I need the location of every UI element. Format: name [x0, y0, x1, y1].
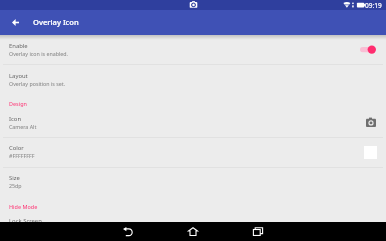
staticText: Icon [9, 115, 22, 123]
staticText: Lock Screen [9, 217, 42, 225]
button[interactable]: Home [178, 222, 208, 241]
staticText: Overlay Icon [33, 17, 79, 27]
button[interactable]: Navigate up [0, 10, 30, 35]
staticText: Size [9, 174, 20, 182]
staticText: Camera Alt [9, 123, 37, 130]
staticText: Layout [9, 72, 28, 80]
button[interactable]: Size [0, 166, 386, 196]
staticText: Color [9, 144, 24, 152]
button[interactable]: Recent apps [243, 222, 273, 241]
staticText: Enable [9, 42, 28, 50]
staticText: Hide Mode [9, 203, 38, 210]
button[interactable]: Choose icon [366, 117, 376, 127]
button[interactable]: Enable [0, 34, 386, 64]
button[interactable]: Enable overlay icon [360, 43, 376, 55]
staticText: 09:19 [365, 1, 382, 10]
button[interactable]: Icon [0, 107, 386, 137]
button[interactable]: Color [0, 136, 386, 166]
staticText: Design [9, 100, 27, 107]
staticText: #FFFFFFFF [9, 152, 35, 159]
staticText: Overlay position is set. [9, 80, 66, 87]
button[interactable]: Lock Screen [0, 209, 386, 239]
staticText: 25dp [9, 182, 22, 189]
button[interactable]: Back [113, 222, 143, 241]
staticText: Overlay icon is enabled. [9, 50, 68, 57]
button[interactable]: Layout [0, 64, 386, 94]
